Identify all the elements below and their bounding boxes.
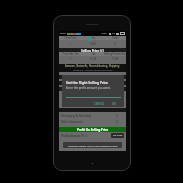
staticText: Tax	[91, 52, 96, 56]
staticText: Price Min Tax	[62, 52, 79, 56]
staticText: Selling Price (₹)	[81, 49, 104, 53]
staticText: 0.00	[90, 42, 96, 46]
button[interactable]: Packaging & Handling	[59, 113, 126, 119]
staticText: CANCEL	[94, 102, 105, 106]
staticText: 1.18	[112, 57, 118, 61]
button[interactable]: Set Profit	[111, 133, 124, 138]
staticText: SellingPriceIncTax	[104, 52, 126, 56]
staticText: Enter the profit amount you want.	[66, 86, 111, 90]
staticText: Tax	[91, 36, 96, 40]
staticText: 0	[116, 114, 118, 118]
staticText: Profit On Selling Price	[77, 128, 109, 132]
staticText: Profit	[112, 36, 119, 40]
staticText: Get the Right Selling Price	[66, 80, 109, 85]
staticText: 00:00	[60, 32, 66, 35]
staticText: Packaging & Handling	[61, 114, 92, 118]
button[interactable]: OK	[110, 101, 118, 107]
staticText: 1	[70, 42, 72, 46]
button[interactable]: Toggle tax	[87, 37, 91, 41]
staticText: Profit Amount (₹): 1	[61, 134, 88, 138]
staticText: 10:59	[101, 32, 107, 35]
staticText: Calculate Selling Price to get Expected …	[68, 144, 118, 147]
staticText: 4G	[112, 32, 115, 35]
staticText: Discount % - discount off with this mont…	[73, 69, 113, 72]
staticText: Amazon, Naturelle, Reconditioning, Shipp…	[65, 64, 120, 68]
staticText: Set Profit	[113, 134, 123, 137]
staticText: 0	[114, 42, 116, 46]
button[interactable]: CANCEL	[92, 101, 107, 107]
staticText: 0.18	[90, 57, 96, 61]
staticText: 0	[116, 120, 118, 124]
staticText: Cost Price	[64, 36, 77, 40]
staticText: Other Expenses	[61, 120, 83, 124]
button[interactable]: Other Expenses	[59, 119, 126, 125]
staticText: OK	[112, 102, 116, 106]
staticText: 1	[70, 57, 72, 61]
button[interactable]: Calculate Selling Price to get Expected …	[63, 142, 122, 148]
